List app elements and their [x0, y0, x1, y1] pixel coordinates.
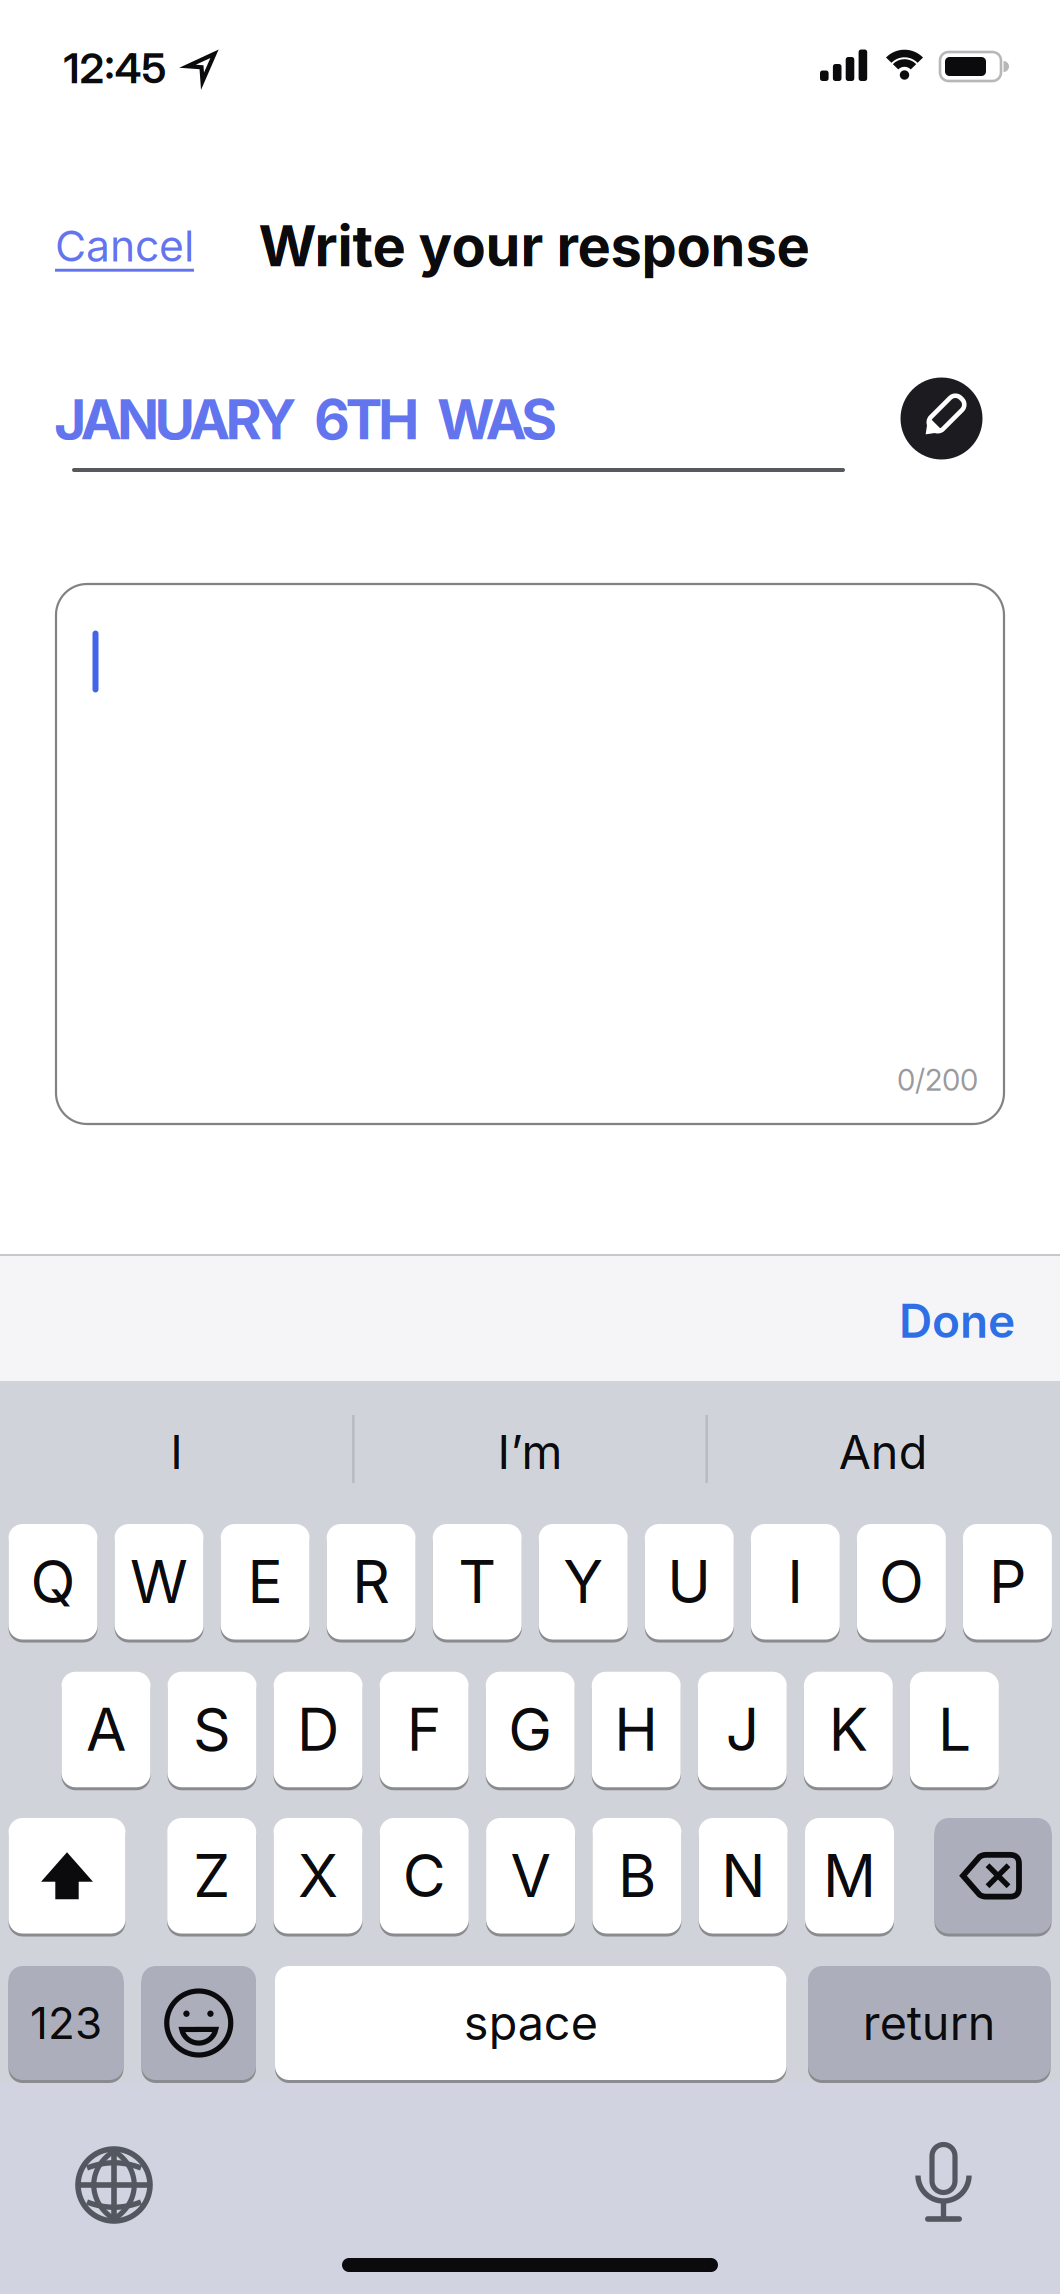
staticText: Done	[899, 1293, 1015, 1349]
staticText: P	[989, 1546, 1026, 1617]
button[interactable]: Next keyboard	[59, 2130, 169, 2240]
staticText: V	[511, 1840, 551, 1911]
staticText: G	[508, 1694, 552, 1765]
button[interactable]: Edit prompt	[900, 377, 982, 459]
staticText: Write your response	[258, 212, 809, 280]
staticText: 123	[30, 1996, 102, 2050]
button[interactable]: V	[486, 1816, 575, 1935]
button[interactable]: Y	[539, 1522, 628, 1641]
button[interactable]: B	[592, 1816, 681, 1935]
staticText: Y	[563, 1546, 603, 1617]
button[interactable]: Z	[167, 1816, 256, 1935]
button[interactable]: E	[221, 1522, 310, 1641]
button[interactable]: L	[910, 1670, 999, 1789]
staticText: K	[829, 1694, 868, 1765]
button[interactable]: And	[713, 1392, 1053, 1512]
staticText: I	[170, 1424, 183, 1480]
button[interactable]: Shift	[8, 1816, 125, 1935]
staticText: E	[248, 1546, 283, 1617]
staticText: H	[614, 1694, 658, 1765]
button[interactable]: D	[274, 1670, 363, 1789]
button[interactable]: H	[592, 1670, 681, 1789]
button[interactable]: O	[857, 1522, 946, 1641]
staticText: X	[298, 1840, 338, 1911]
staticText: JANUARY	[54, 385, 296, 452]
button[interactable]: 123	[8, 1964, 123, 2081]
staticText: return	[863, 1995, 996, 2051]
staticText: C	[403, 1840, 446, 1911]
staticText: Cancel	[55, 220, 194, 272]
staticText: M	[823, 1840, 876, 1911]
staticText: A	[86, 1694, 126, 1765]
staticText: B	[618, 1840, 656, 1911]
button[interactable]: Response text field	[56, 584, 1004, 1124]
staticText: And	[839, 1424, 928, 1480]
button[interactable]: A	[61, 1670, 150, 1789]
staticText: W	[130, 1546, 188, 1617]
button[interactable]: G	[486, 1670, 575, 1789]
button[interactable]: J	[698, 1670, 787, 1789]
button[interactable]: U	[645, 1522, 734, 1641]
button[interactable]: R	[327, 1522, 416, 1641]
staticText: 12:45	[63, 43, 166, 93]
button[interactable]: I	[751, 1522, 840, 1641]
staticText: Z	[193, 1840, 230, 1911]
button[interactable]: Done	[899, 1293, 1015, 1349]
staticText: Q	[30, 1546, 75, 1617]
staticText: J	[726, 1694, 759, 1765]
button[interactable]: F	[380, 1670, 469, 1789]
button[interactable]: Emoji	[141, 1964, 256, 2081]
button[interactable]: I’m	[360, 1392, 700, 1512]
button[interactable]: W	[115, 1522, 204, 1641]
staticText: L	[938, 1694, 971, 1765]
staticText: T	[458, 1546, 496, 1617]
button[interactable]: P	[963, 1522, 1052, 1641]
staticText: D	[297, 1694, 339, 1765]
button[interactable]: T	[433, 1522, 522, 1641]
staticText: 0/200	[897, 1062, 978, 1098]
button[interactable]: space	[275, 1964, 786, 2081]
staticText: WAS	[437, 385, 557, 452]
button[interactable]: K	[804, 1670, 893, 1789]
staticText: 6TH	[314, 385, 419, 452]
staticText: U	[667, 1546, 711, 1617]
staticText: F	[407, 1694, 442, 1765]
staticText: I’m	[497, 1424, 562, 1480]
staticText: S	[193, 1694, 231, 1765]
button[interactable]: M	[805, 1816, 894, 1935]
staticText: R	[352, 1546, 390, 1617]
staticText: O	[879, 1546, 924, 1617]
button[interactable]: X	[273, 1816, 362, 1935]
staticText: I	[787, 1546, 803, 1617]
button[interactable]: I	[7, 1392, 347, 1512]
button[interactable]: N	[699, 1816, 788, 1935]
button[interactable]: S	[168, 1670, 257, 1789]
staticText: N	[721, 1840, 765, 1911]
button[interactable]: Cancel	[55, 220, 194, 272]
button[interactable]: return	[808, 1964, 1050, 2081]
button[interactable]: Dictate	[888, 2127, 998, 2237]
button[interactable]: Q	[8, 1522, 97, 1641]
button[interactable]: Delete	[934, 1816, 1051, 1935]
staticText: space	[464, 1995, 598, 2051]
button[interactable]: C	[380, 1816, 469, 1935]
